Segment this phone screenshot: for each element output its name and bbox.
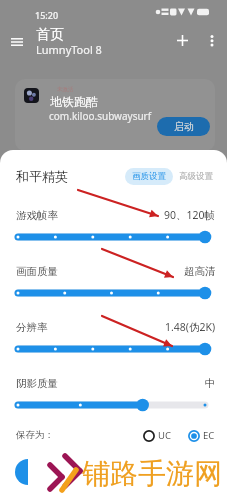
- staticText: 画质设置: [132, 171, 166, 182]
- button[interactable]: EC: [187, 427, 216, 444]
- staticText: 首页: [36, 26, 64, 44]
- button[interactable]: Menu: [3, 28, 31, 56]
- button[interactable]: UC: [142, 427, 172, 444]
- button[interactable]: More options: [198, 26, 226, 54]
- staticText: 90、120帧: [164, 208, 216, 222]
- staticText: EC: [203, 429, 215, 442]
- button[interactable]: 画面质量: [0, 285, 227, 301]
- staticText: 游戏帧率: [16, 209, 58, 222]
- staticText: 高级设置: [179, 171, 213, 182]
- staticText: 铺路手游网: [82, 456, 222, 491]
- staticText: com.kiloo.subwaysurf: [49, 109, 152, 123]
- staticText: 和平精英: [16, 168, 68, 184]
- button[interactable]: 高级设置: [177, 168, 215, 185]
- button[interactable]: 分辨率: [0, 341, 227, 357]
- button[interactable]: 未激活: [15, 79, 215, 151]
- staticText: LumnyTool 8: [36, 42, 102, 57]
- staticText: 1.48(伪2K): [165, 320, 216, 334]
- staticText: UC: [158, 429, 171, 442]
- staticText: 保存为：: [16, 429, 54, 441]
- button[interactable]: Add: [168, 26, 196, 54]
- staticText: 启动: [174, 120, 194, 133]
- staticText: 阴影质量: [16, 377, 58, 390]
- button[interactable]: 画质设置: [125, 168, 173, 185]
- staticText: 分辨率: [16, 321, 48, 334]
- button[interactable]: 游戏帧率: [0, 229, 227, 245]
- staticText: 画面质量: [16, 265, 58, 278]
- staticText: 地铁跑酷: [50, 94, 98, 109]
- staticText: 中: [205, 377, 216, 390]
- button[interactable]: 启动: [157, 117, 210, 136]
- staticText: 未激活: [57, 86, 74, 93]
- staticText: 15:20: [35, 9, 59, 21]
- button[interactable]: 阴影质量: [0, 397, 227, 413]
- staticText: 超高清: [184, 265, 216, 278]
